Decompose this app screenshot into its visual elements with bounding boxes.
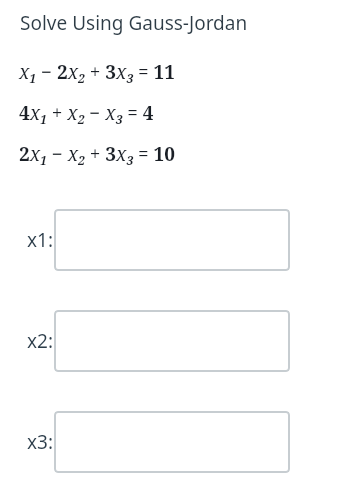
button[interactable]: Answer field for x2: [54, 310, 290, 372]
staticText: x2: [27, 328, 54, 354]
button[interactable]: Answer field for x3: [54, 411, 290, 473]
staticText: Solve Using Gauss-Jordan [20, 10, 248, 36]
staticText: 2x1 − x2 + 3x3 = 10 [19, 141, 176, 168]
button[interactable]: Answer field for x1: [54, 209, 290, 271]
staticText: x3: [27, 429, 54, 455]
staticText: x1: [27, 227, 54, 253]
staticText: 4x1 + x2 − x3 = 4 [19, 100, 154, 127]
staticText: x1 − 2x2 + 3x3 = 11 [19, 59, 176, 86]
